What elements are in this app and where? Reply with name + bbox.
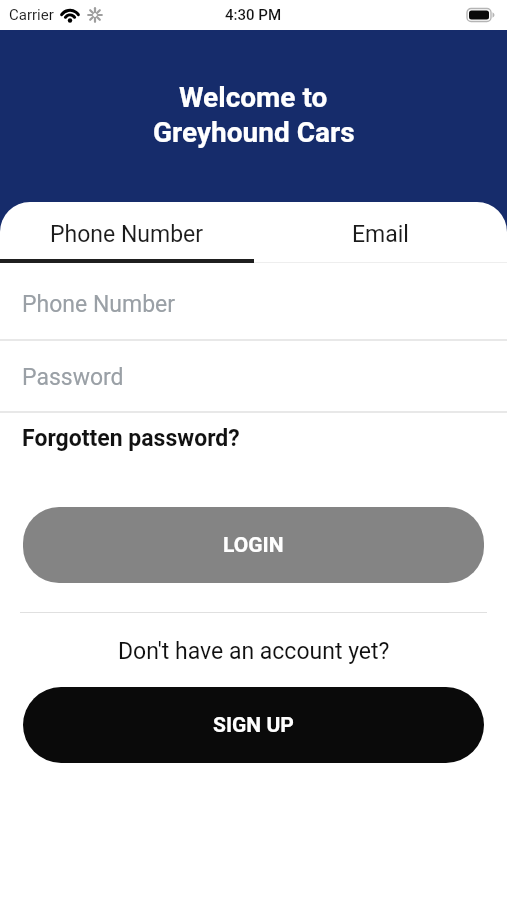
staticText: SIGN UP: [213, 713, 294, 738]
staticText: Carrier: [9, 6, 54, 24]
button[interactable]: Email: [253, 209, 507, 259]
staticText: Email: [352, 221, 409, 248]
button[interactable]: Phone Number: [0, 209, 253, 259]
staticText: Don't have an account yet?: [118, 638, 390, 665]
button[interactable]: LOGIN: [23, 507, 484, 583]
button[interactable]: SIGN UP: [23, 687, 484, 763]
button[interactable]: Forgotten password?: [22, 425, 240, 452]
button[interactable]: Password: [22, 364, 507, 391]
staticText: Welcome to: [179, 81, 328, 114]
staticText: Phone Number: [50, 221, 204, 248]
button[interactable]: Phone Number: [22, 291, 507, 318]
staticText: Greyhound Cars: [153, 116, 355, 149]
staticText: 4:30 PM: [225, 6, 282, 24]
staticText: LOGIN: [223, 533, 284, 558]
